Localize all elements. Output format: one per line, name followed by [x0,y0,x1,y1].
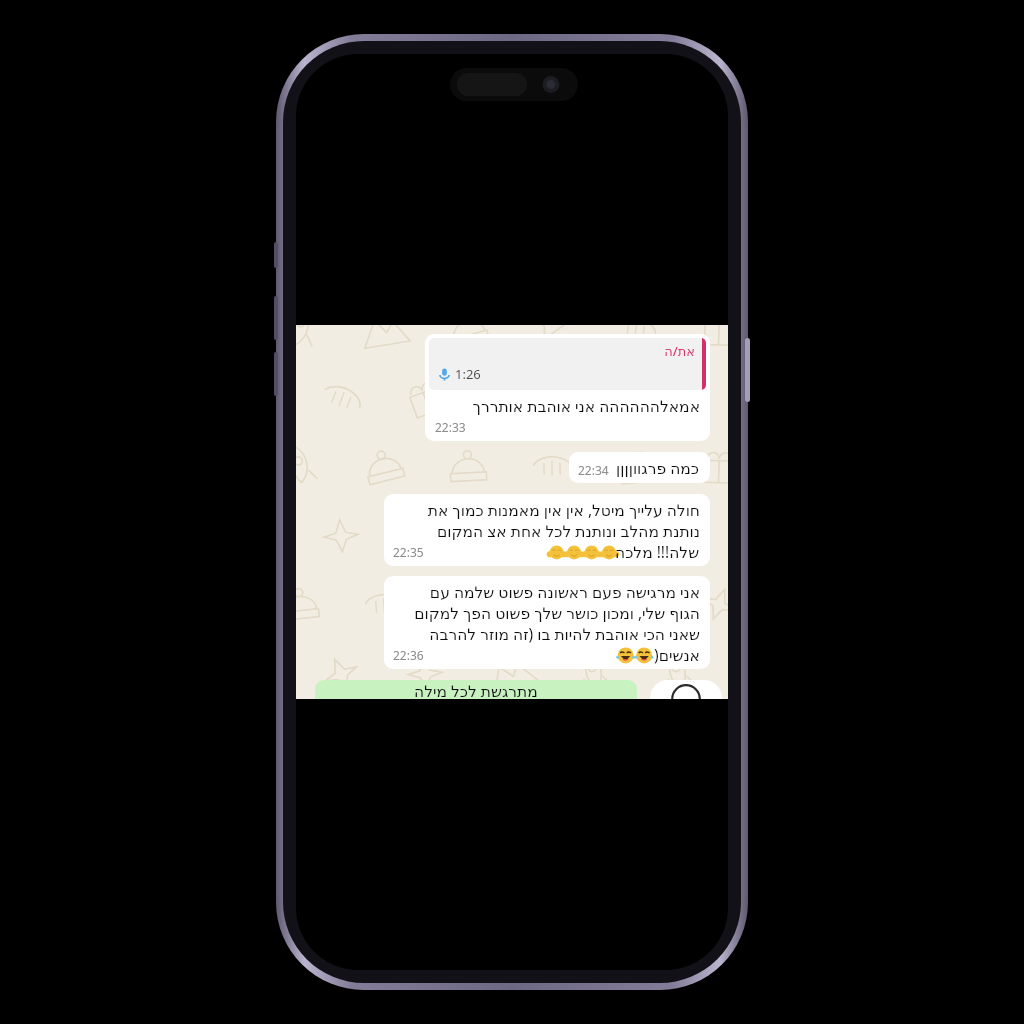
button[interactable]: את/ה [425,334,710,441]
staticText: אני מרגישה פעם ראשונה פשוט שלמה עם הגוף … [393,581,700,644]
staticText: 22:33 [435,419,466,435]
staticText: חולה עלייך מיטל, אין אין מאמנות כמוך את … [393,499,700,541]
staticText: 22:35 [393,544,424,560]
button[interactable]: מתרגשת לכל מילה [315,680,637,699]
staticText: מתרגשת לכל מילה [414,680,538,699]
staticText: )אנשים [654,644,700,665]
staticText: את/ה [438,342,695,360]
staticText: כמה פרגווןןןן [616,457,700,478]
button[interactable]: חולה עלייך מיטל, אין אין מאמנות כמוך את … [384,494,710,566]
staticText: 1:26 [455,365,481,383]
staticText: 22:36 [393,647,424,663]
button[interactable]: 22:34 [569,452,710,483]
staticText: אמאלהההההה אני אוהבת אותררך [435,395,700,416]
staticText: שלה!!! מלכה [615,541,700,562]
staticText: 22:34 [578,462,609,478]
button[interactable]: אני מרגישה פעם ראשונה פשוט שלמה עם הגוף … [384,576,710,669]
button[interactable]: Emoji picker [650,680,722,699]
